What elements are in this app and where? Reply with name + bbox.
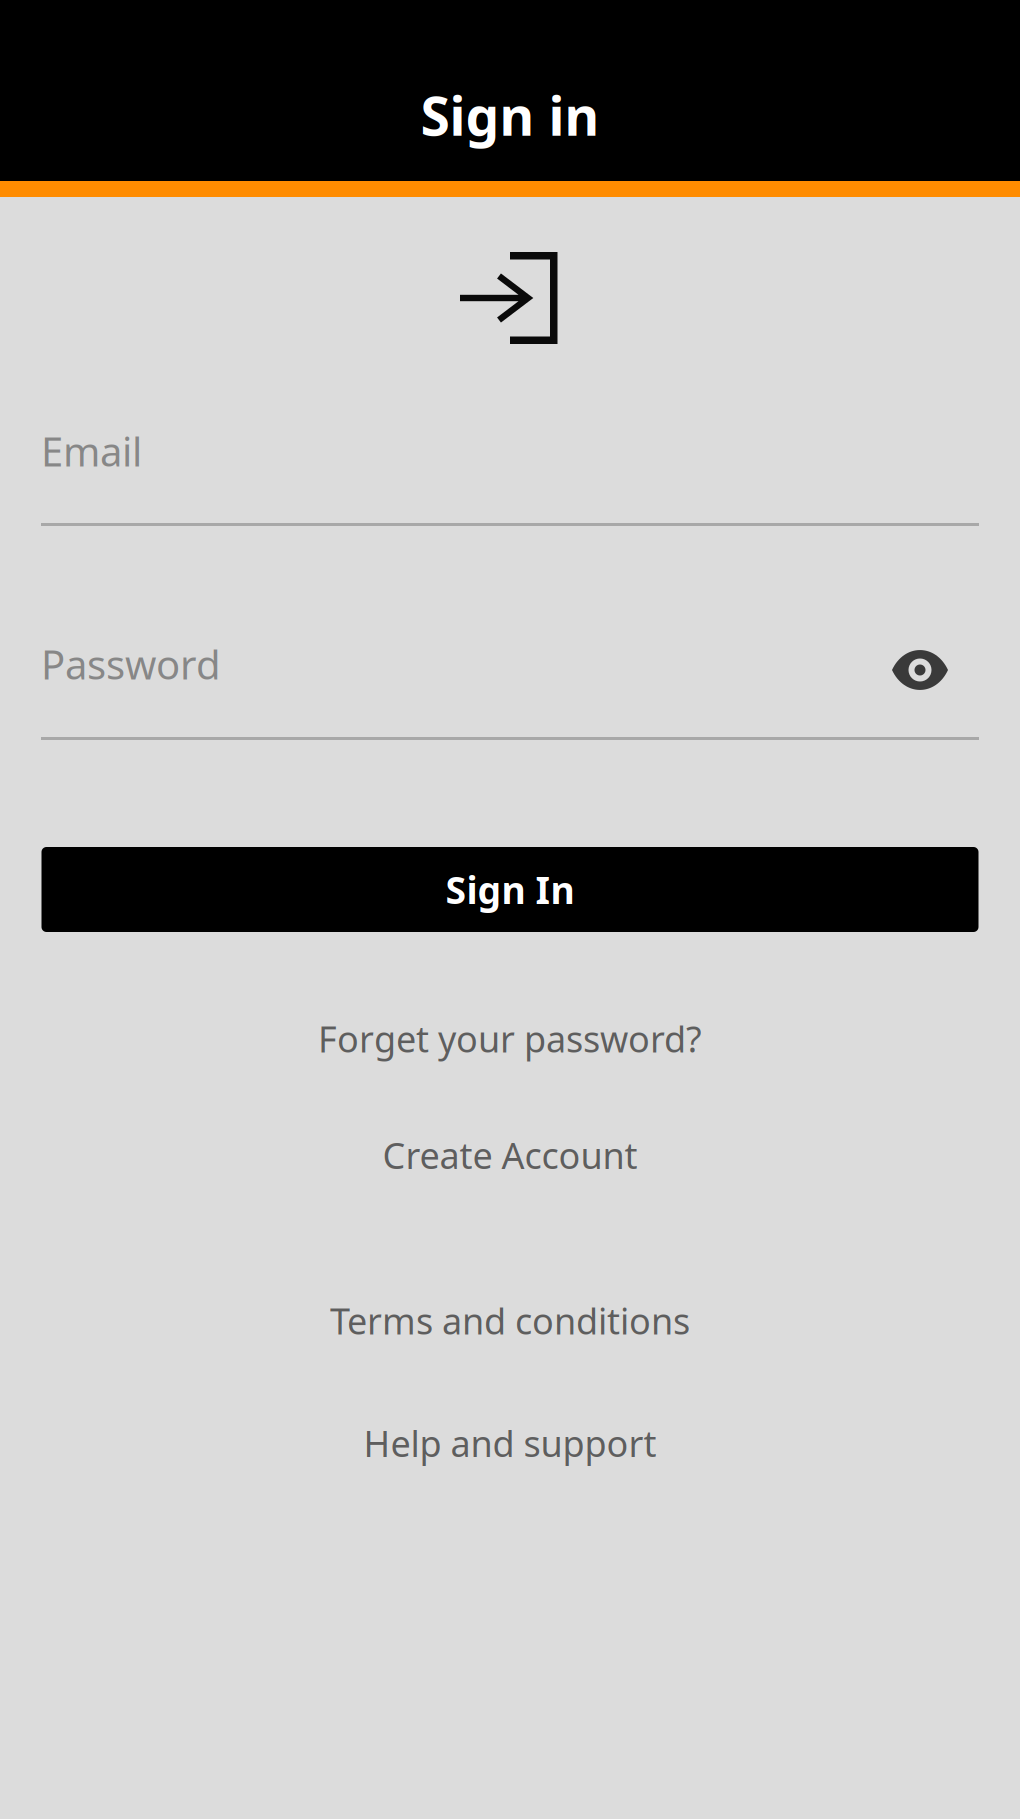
button[interactable]: Sign In xyxy=(41,847,978,932)
staticText: Email xyxy=(41,424,142,477)
staticText: Create Account xyxy=(382,1131,637,1179)
button[interactable]: Create Account xyxy=(0,1128,1020,1182)
button[interactable]: Password xyxy=(41,629,979,740)
staticText: Help and support xyxy=(363,1419,656,1467)
staticText: Sign In xyxy=(445,865,574,914)
button[interactable]: Forget your password? xyxy=(0,1011,1020,1065)
button[interactable]: Terms and conditions xyxy=(0,1293,1020,1347)
staticText: Sign in xyxy=(420,80,599,150)
staticText: Password xyxy=(41,637,221,690)
staticText: Forget your password? xyxy=(318,1015,702,1062)
staticText: Terms and conditions xyxy=(330,1297,690,1344)
button[interactable]: Help and support xyxy=(0,1416,1020,1470)
button[interactable]: Email xyxy=(41,416,979,526)
button[interactable]: Show password xyxy=(892,629,979,740)
